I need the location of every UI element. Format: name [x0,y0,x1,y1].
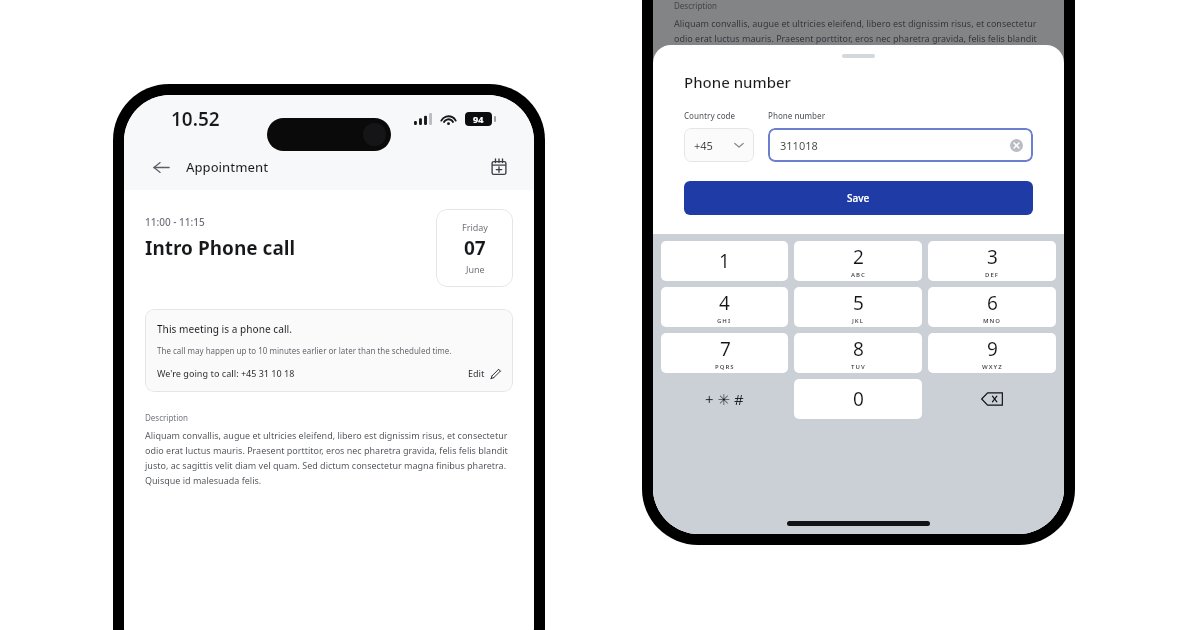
staticText: 9 [987,336,998,362]
staticText: +45 [694,138,713,153]
button[interactable]: Friday [436,209,513,287]
staticText: 6 [987,290,998,316]
staticText: Intro Phone call [145,235,296,261]
staticText: This meeting is a phone call. [157,322,293,336]
button[interactable]: 6 [928,287,1056,327]
staticText: 8 [853,336,864,362]
button[interactable]: 4 [661,287,788,327]
button[interactable]: +45 [684,128,754,162]
button[interactable]: 1 [661,241,788,281]
staticText: Country code [684,110,736,121]
button[interactable]: 2 [794,241,922,281]
staticText: 0 [853,386,864,412]
staticText: June [466,263,485,275]
staticText: DEF [985,271,999,279]
staticText: Aliquam convallis, augue et ultricies el… [674,17,1043,59]
staticText: Aliquam convallis, augue et ultricies el… [145,429,513,486]
button[interactable]: Back [144,150,178,184]
staticText: Phone number [684,72,791,92]
button[interactable]: 9 [928,333,1056,373]
staticText: 1 [719,248,730,274]
staticText: Description [674,0,718,11]
staticText: PQRS [715,363,735,371]
button[interactable]: Edit [468,367,501,379]
staticText: 5 [853,290,864,316]
staticText: JKL [852,317,865,325]
button[interactable]: Clear [1010,139,1023,152]
staticText: WXYZ [982,363,1003,371]
staticText: 311018 [780,138,818,153]
button[interactable]: 3 [928,241,1056,281]
button[interactable]: Add to calendar [484,152,514,182]
button[interactable]: 7 [661,333,788,373]
button[interactable]: 0 [794,379,922,419]
staticText: MNO [983,317,1002,325]
staticText: 94 [473,113,484,125]
staticText: We're going to call: +45 31 10 18 [157,367,295,379]
staticText: The call may happen up to 10 minutes ear… [157,345,452,356]
button[interactable]: 5 [794,287,922,327]
staticText: 4 [719,290,730,316]
staticText: Phone number [768,110,826,121]
staticText: TUV [851,363,866,371]
staticText: Edit [468,367,485,379]
button[interactable]: 311018 [768,128,1033,162]
button[interactable]: Save [684,181,1033,215]
staticText: Appointment [186,158,269,176]
staticText: Description [145,412,189,423]
button[interactable]: 8 [794,333,922,373]
button[interactable]: Backspace [928,379,1056,419]
staticText: 11:00 - 11:15 [145,215,205,229]
staticText: 2 [853,244,864,270]
staticText: Friday [462,221,488,233]
staticText: + ✳ # [705,389,744,409]
staticText: Save [847,191,870,205]
staticText: 10.52 [171,106,220,132]
button[interactable]: + ✳ # [661,379,788,419]
staticText: ABC [851,271,866,279]
staticText: GHI [717,317,732,325]
staticText: 7 [720,336,731,362]
staticText: 07 [464,235,486,261]
staticText: 3 [987,244,998,270]
